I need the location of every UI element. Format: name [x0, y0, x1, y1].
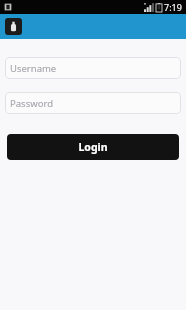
staticText: Login	[78, 140, 108, 154]
staticText: 7:19	[164, 1, 182, 13]
other: Battery	[156, 3, 162, 12]
other: Signal strength	[144, 3, 154, 12]
button[interactable]: App icon, navigate up	[5, 18, 22, 35]
staticText: Username	[10, 62, 57, 75]
button[interactable]: Username	[5, 57, 181, 79]
staticText: Password	[10, 97, 53, 110]
button[interactable]: Login	[7, 134, 179, 160]
button[interactable]: Password	[5, 92, 181, 114]
